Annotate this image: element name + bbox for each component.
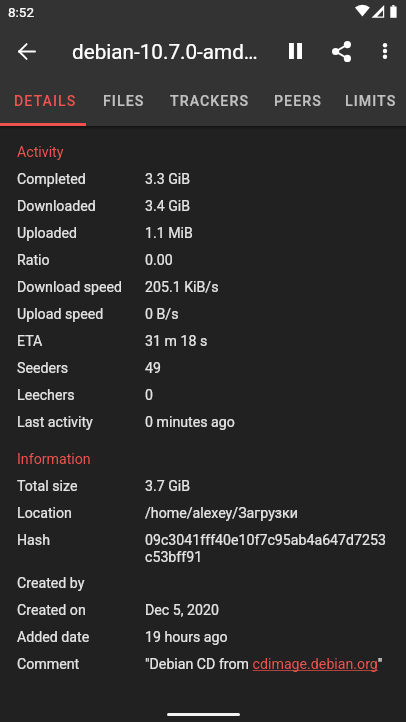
staticText: 0 B/s bbox=[145, 306, 179, 323]
staticText: DETAILS bbox=[14, 93, 77, 110]
staticText: Leechers bbox=[17, 387, 75, 404]
button[interactable]: Share bbox=[318, 28, 364, 74]
staticText: Hash bbox=[17, 532, 50, 549]
staticText: Location bbox=[17, 505, 72, 522]
button[interactable]: Back bbox=[2, 28, 50, 74]
staticText: 0 bbox=[145, 387, 153, 404]
staticText: Information bbox=[17, 451, 91, 468]
staticText: Added date bbox=[17, 629, 90, 646]
staticText: /home/alexey/Загрузки bbox=[145, 505, 298, 522]
staticText: Last activity bbox=[17, 414, 93, 431]
staticText: TRACKERS bbox=[170, 93, 250, 110]
staticText: 49 bbox=[145, 360, 161, 377]
button[interactable]: FILES bbox=[88, 76, 159, 126]
staticText: 1.1 MiB bbox=[145, 225, 193, 242]
button[interactable]: TRACKERS bbox=[158, 76, 261, 126]
staticText: debian-10.7.0-amd… bbox=[72, 40, 258, 64]
button[interactable]: DETAILS bbox=[2, 76, 88, 126]
staticText: 0.00 bbox=[145, 252, 173, 269]
staticText: LIMITS bbox=[345, 93, 397, 110]
button[interactable]: More options bbox=[364, 28, 406, 74]
staticText: Uploaded bbox=[17, 225, 77, 242]
button[interactable]: LIMITS bbox=[335, 76, 406, 126]
staticText: 31 m 18 s bbox=[145, 333, 208, 350]
button[interactable]: "Debian CD from cdimage.debian.org" bbox=[145, 656, 383, 673]
staticText: PEERS bbox=[274, 93, 322, 110]
staticText: Ratio bbox=[17, 252, 50, 269]
staticText: Completed bbox=[17, 171, 86, 188]
staticText: 3.4 GiB bbox=[145, 198, 191, 215]
staticText: Created by bbox=[17, 575, 85, 592]
staticText: 8:52 bbox=[8, 4, 35, 20]
staticText: 19 hours ago bbox=[145, 629, 228, 646]
staticText: ETA bbox=[17, 333, 43, 350]
staticText: 0 minutes ago bbox=[145, 414, 235, 431]
staticText: Comment bbox=[17, 656, 80, 673]
staticText: Download speed bbox=[17, 279, 123, 296]
button[interactable]: Pause bbox=[272, 28, 318, 74]
staticText: Downloaded bbox=[17, 198, 96, 215]
staticText: 205.1 KiB/s bbox=[145, 279, 219, 296]
staticText: Total size bbox=[17, 478, 78, 495]
staticText: Seeders bbox=[17, 360, 69, 377]
staticText: 09c3041fff40e10f7c95ab4a647d7253c53bff91 bbox=[145, 532, 391, 565]
staticText: FILES bbox=[103, 93, 145, 110]
staticText: Created on bbox=[17, 602, 86, 619]
staticText: 3.7 GiB bbox=[145, 478, 191, 495]
staticText: Upload speed bbox=[17, 306, 104, 323]
staticText: 3.3 GiB bbox=[145, 171, 191, 188]
button[interactable]: PEERS bbox=[261, 76, 335, 126]
staticText: Activity bbox=[17, 144, 64, 161]
staticText: Dec 5, 2020 bbox=[145, 602, 219, 619]
